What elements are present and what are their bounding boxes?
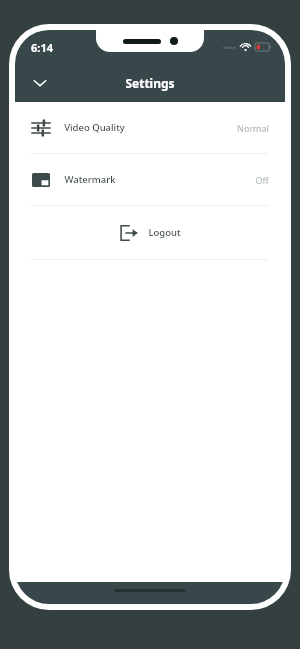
button[interactable]: Video Quality [15, 102, 285, 153]
staticText: Logout [148, 226, 181, 239]
staticText: Watermark [64, 173, 116, 186]
button[interactable]: Watermark [15, 154, 285, 205]
button[interactable]: Logout [15, 206, 285, 259]
staticText: Off [255, 174, 269, 186]
staticText: 6:14 [31, 40, 53, 55]
staticText: Normal [237, 122, 269, 134]
button[interactable]: Collapse [23, 66, 57, 100]
staticText: Settings [125, 75, 175, 91]
staticText: Video Quality [64, 121, 125, 134]
